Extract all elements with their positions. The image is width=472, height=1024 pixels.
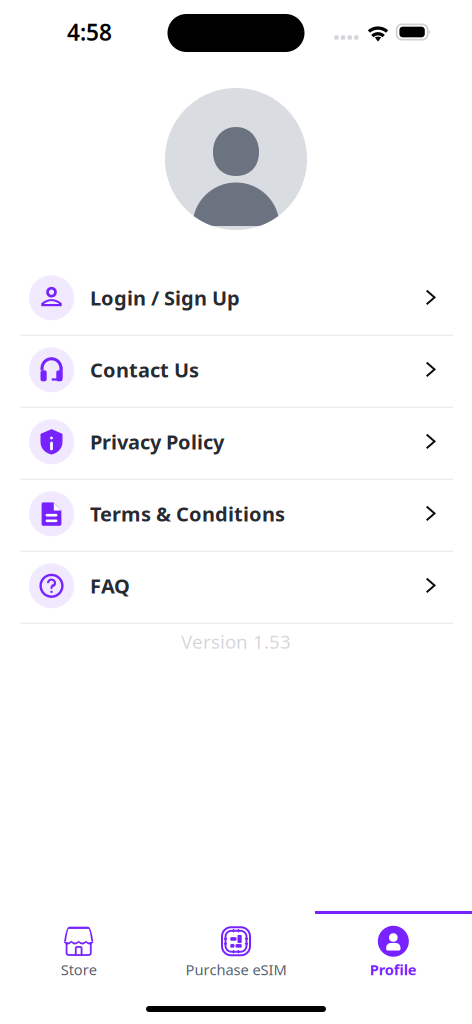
staticText: Profile <box>370 960 417 979</box>
staticText: 4:58 <box>67 17 112 47</box>
staticText: Login / Sign Up <box>90 284 240 311</box>
staticText: Purchase eSIM <box>185 960 286 979</box>
button[interactable]: Login / Sign Up <box>0 264 472 335</box>
button[interactable]: Privacy Policy <box>0 408 472 479</box>
staticText: Terms & Conditions <box>90 500 285 527</box>
button[interactable]: Contact Us <box>0 336 472 407</box>
button[interactable]: Terms & Conditions <box>0 480 472 551</box>
button[interactable]: Store <box>0 914 157 982</box>
staticText: Privacy Policy <box>90 428 224 455</box>
button[interactable]: Profile <box>315 914 472 982</box>
staticText: FAQ <box>90 572 130 599</box>
staticText: Contact Us <box>90 356 199 383</box>
button[interactable]: FAQ <box>0 552 472 623</box>
staticText: Store <box>61 960 97 979</box>
staticText: Version 1.53 <box>181 629 291 654</box>
button[interactable]: Purchase eSIM <box>157 914 315 982</box>
